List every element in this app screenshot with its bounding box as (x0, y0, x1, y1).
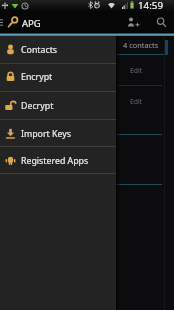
button[interactable]: Open navigation drawer (0, 11, 4, 33)
staticText: Edit (130, 97, 143, 106)
button[interactable]: Decrypt (0, 92, 116, 119)
button[interactable]: Contacts (0, 36, 116, 63)
staticText: Decrypt (21, 100, 54, 112)
button[interactable]: Registered Apps (0, 147, 116, 174)
staticText: Import Keys (21, 128, 71, 140)
staticText: Encrypt (21, 71, 53, 83)
staticText: Contacts (21, 44, 58, 56)
staticText: APG (22, 17, 41, 30)
staticText: Registered Apps (21, 155, 89, 167)
staticText: 4 contacts (123, 40, 159, 50)
button[interactable]: Search (150, 11, 172, 33)
button[interactable]: Encrypt (0, 63, 116, 90)
button[interactable]: Add contact (122, 11, 144, 33)
staticText: Edit (130, 66, 143, 75)
button[interactable]: Import Keys (0, 120, 116, 147)
staticText: 14:59 (138, 0, 164, 10)
